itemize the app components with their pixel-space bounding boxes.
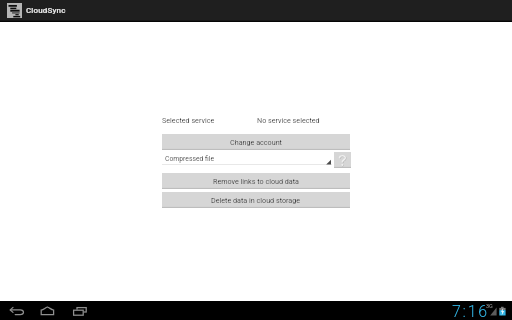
button[interactable]: Recent apps xyxy=(71,301,90,320)
button[interactable]: Change account xyxy=(162,134,350,150)
staticText: No service selected xyxy=(257,116,320,124)
button[interactable]: Remove links to cloud data xyxy=(162,173,350,189)
staticText: Selected service xyxy=(162,116,215,124)
button[interactable]: Home xyxy=(38,301,57,320)
staticText: CloudSync xyxy=(26,6,66,15)
staticText: 7:16 xyxy=(452,302,489,320)
button[interactable]: Compressed file xyxy=(162,152,332,166)
staticText: 3G xyxy=(486,303,493,309)
staticText: Change account xyxy=(230,138,282,146)
button[interactable]: Help xyxy=(334,152,351,168)
staticText: Remove links to cloud data xyxy=(213,177,300,185)
staticText: Delete data in cloud storage xyxy=(211,196,301,204)
button[interactable]: Delete data in cloud storage xyxy=(162,192,350,208)
staticText: Compressed file xyxy=(165,155,215,163)
button[interactable]: Back xyxy=(7,301,25,320)
